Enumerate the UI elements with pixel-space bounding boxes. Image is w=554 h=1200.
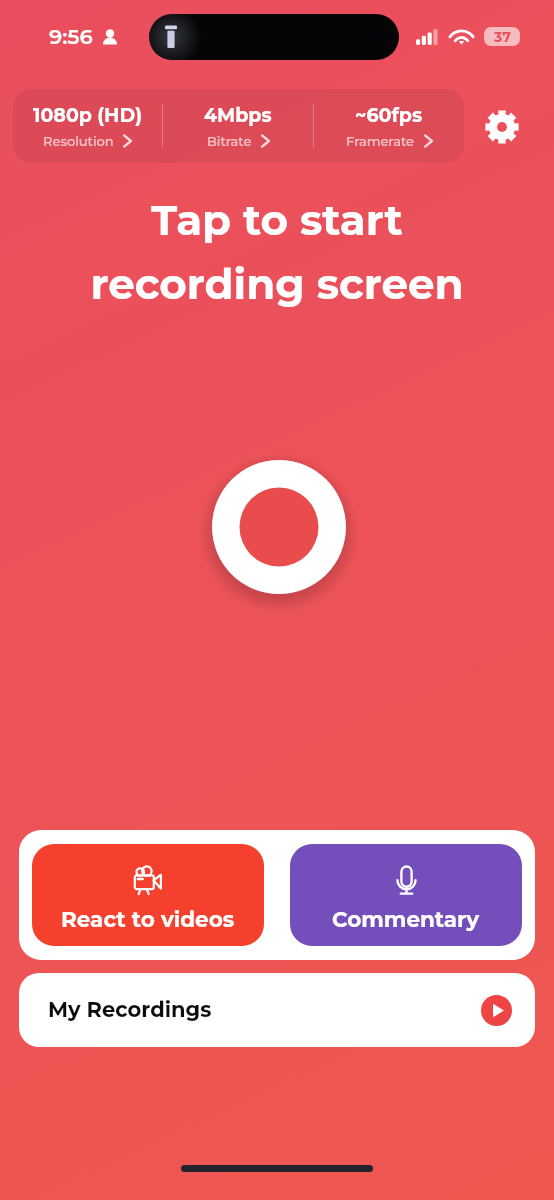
staticText: Framerate [346, 133, 415, 149]
button[interactable]: 1080p (HD) [13, 89, 162, 163]
staticText: 9:56 [49, 24, 93, 50]
staticText: Commentary [332, 906, 480, 932]
button[interactable]: 4Mbps [163, 89, 313, 163]
staticText: React to videos [61, 906, 235, 932]
button[interactable]: React to videos [32, 844, 264, 946]
button[interactable]: Start recording [211, 459, 347, 595]
staticText: 4Mbps [204, 104, 272, 127]
button[interactable]: My Recordings [19, 973, 535, 1047]
staticText: Bitrate [207, 133, 252, 149]
staticText: Resolution [43, 133, 114, 149]
staticText: ~60fps [355, 104, 423, 127]
staticText: 37 [494, 28, 511, 45]
staticText: 1080p (HD) [33, 104, 143, 127]
button[interactable]: ~60fps [314, 89, 464, 163]
button[interactable]: Commentary [290, 844, 522, 946]
button[interactable]: Settings [480, 105, 523, 148]
staticText: My Recordings [48, 997, 212, 1023]
staticText: Tap to start recording screen [0, 194, 554, 309]
